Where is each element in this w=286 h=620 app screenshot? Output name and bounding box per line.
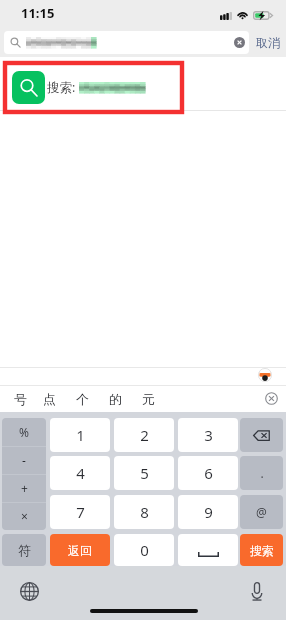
button[interactable]: 6 xyxy=(178,456,238,490)
button[interactable]: Clear text xyxy=(4,31,249,54)
button[interactable]: 搜索: xyxy=(0,60,286,114)
staticText: 3 xyxy=(204,425,213,445)
staticText: 1 xyxy=(76,425,85,445)
button[interactable]: 9 xyxy=(178,495,238,529)
other: Backspace xyxy=(253,430,270,441)
button[interactable]: Voice input xyxy=(250,582,264,601)
button[interactable]: 的 xyxy=(99,385,132,412)
staticText: 元 xyxy=(142,391,155,407)
button[interactable]: Hide candidates xyxy=(265,392,278,405)
button[interactable]: 符 xyxy=(2,534,46,566)
button[interactable]: 个 xyxy=(66,385,99,412)
staticText: 0 xyxy=(140,540,149,560)
button[interactable]: 点 xyxy=(33,385,66,412)
staticText: 点 xyxy=(43,391,56,407)
staticText: 个 xyxy=(76,391,89,407)
staticText: 11:15 xyxy=(21,4,55,22)
button[interactable]: × xyxy=(2,502,46,530)
staticText: × xyxy=(21,508,28,524)
button[interactable]: 7 xyxy=(50,495,110,529)
button[interactable]: . xyxy=(240,456,283,490)
button[interactable]: 8 xyxy=(114,495,174,529)
staticText: 6 xyxy=(204,463,213,483)
button[interactable]: Clear text xyxy=(234,37,245,48)
button[interactable]: % xyxy=(2,418,46,446)
button[interactable]: Emoji keyboard xyxy=(258,368,272,382)
staticText: 的 xyxy=(109,391,122,407)
button[interactable]: - xyxy=(2,446,46,474)
button[interactable]: Backspace xyxy=(240,418,283,452)
button[interactable]: 0 xyxy=(114,534,174,566)
button[interactable]: 搜索 xyxy=(240,534,283,566)
button[interactable]: 3 xyxy=(178,418,238,452)
button[interactable]: 返回 xyxy=(50,534,110,566)
staticText: 2 xyxy=(140,425,149,445)
button[interactable]: 5 xyxy=(114,456,174,490)
staticText: . xyxy=(260,465,264,481)
staticText: 8 xyxy=(140,502,149,522)
button[interactable]: 1 xyxy=(50,418,110,452)
button[interactable]: Switch input language xyxy=(20,582,39,601)
button[interactable]: 取消 xyxy=(249,28,286,57)
other: Space xyxy=(198,552,219,557)
staticText: 搜索: xyxy=(47,79,76,96)
button[interactable]: + xyxy=(2,474,46,502)
button[interactable]: 号 xyxy=(4,385,37,412)
staticText: 符 xyxy=(18,542,31,558)
staticText: - xyxy=(22,452,26,468)
staticText: 5 xyxy=(140,463,149,483)
staticText: + xyxy=(21,480,28,496)
staticText: 7 xyxy=(76,502,85,522)
staticText: 4 xyxy=(76,463,85,483)
staticText: % xyxy=(19,424,29,440)
button[interactable]: Space xyxy=(178,534,238,566)
button[interactable]: @ xyxy=(240,495,283,529)
staticText: 9 xyxy=(204,502,213,522)
button[interactable]: 元 xyxy=(132,385,165,412)
staticText: 返回 xyxy=(68,543,92,558)
button[interactable]: 2 xyxy=(114,418,174,452)
staticText: 号 xyxy=(14,391,27,407)
staticText: 取消 xyxy=(256,35,280,50)
staticText: @ xyxy=(256,504,267,520)
staticText: 搜索 xyxy=(250,543,274,558)
button[interactable]: 4 xyxy=(50,456,110,490)
